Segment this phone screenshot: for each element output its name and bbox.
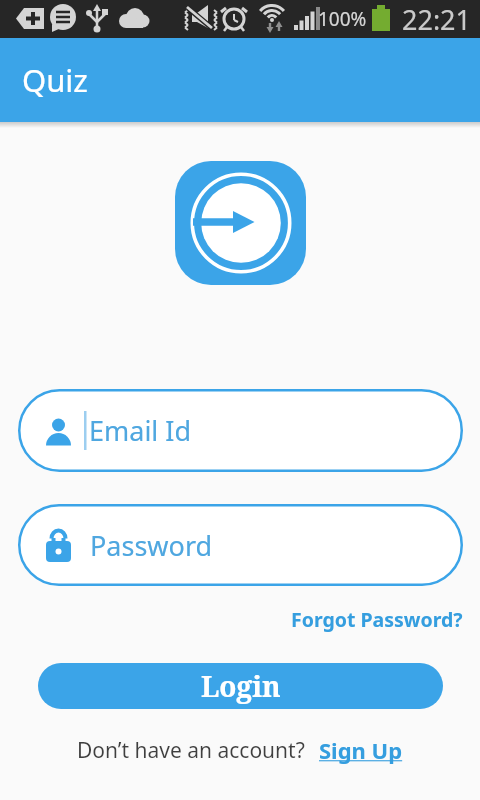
staticText: Don’t have an account? (77, 736, 305, 765)
button[interactable]: Login (38, 663, 443, 709)
staticText: Sign Up (319, 735, 403, 765)
staticText: Password (90, 527, 213, 564)
staticText: 100% (318, 6, 367, 32)
button[interactable]: Email Id (18, 389, 463, 472)
staticText: Forgot Password? (291, 606, 463, 633)
staticText: 22:21 (402, 1, 472, 38)
staticText: Quiz (22, 59, 88, 101)
staticText: Email Id (89, 412, 192, 449)
staticText: Login (201, 667, 281, 705)
button[interactable]: Password (18, 504, 463, 586)
button[interactable]: Forgot Password? (291, 606, 463, 633)
button[interactable]: Sign Up (319, 735, 403, 765)
